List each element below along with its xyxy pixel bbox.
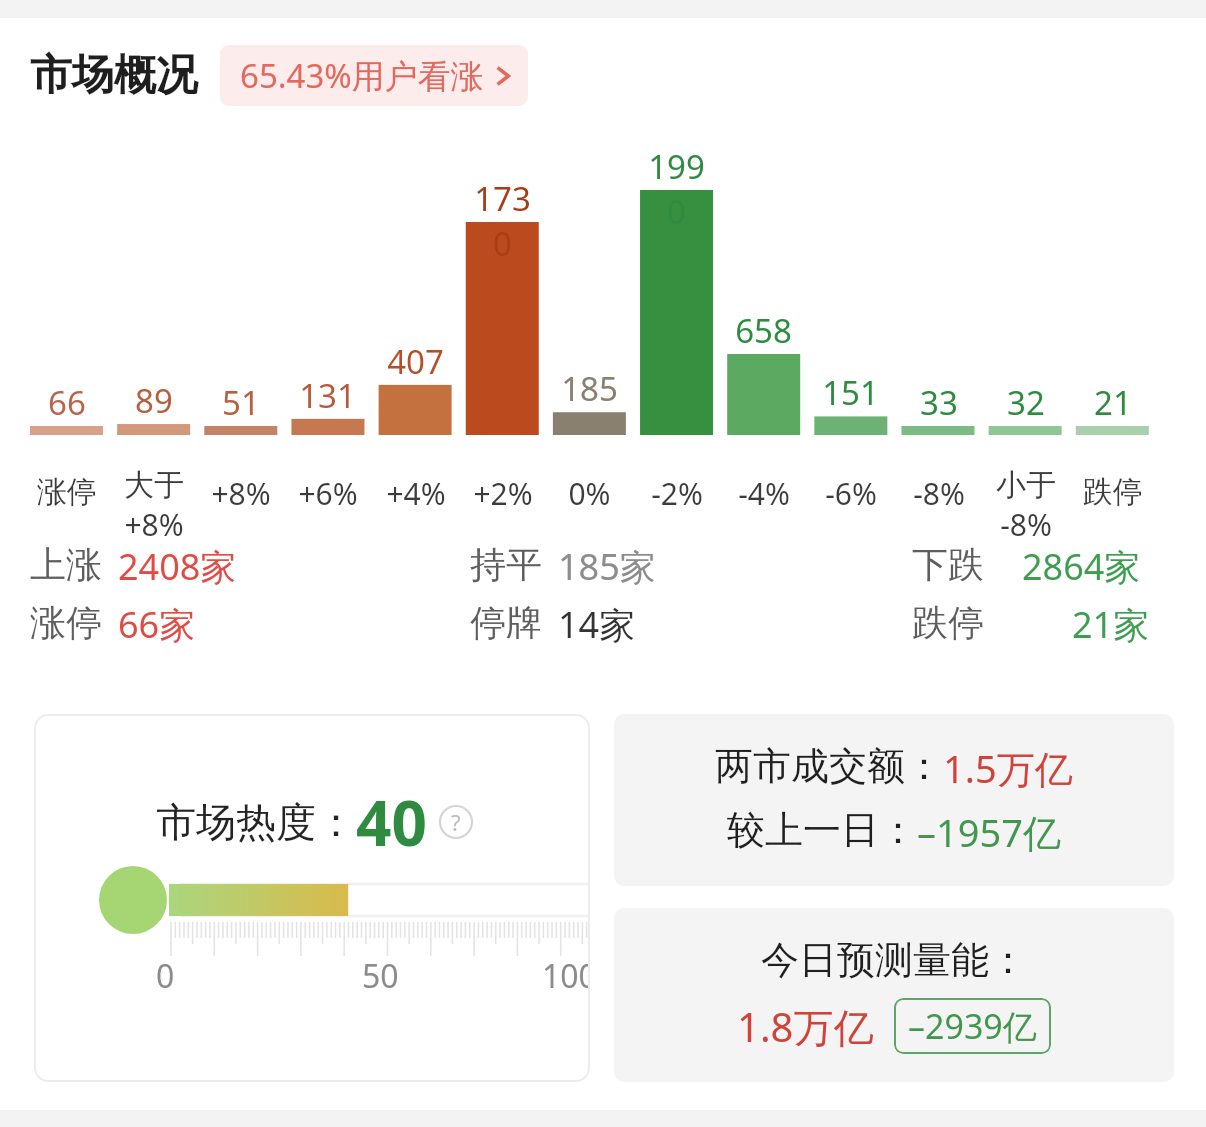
- staticText: 跌停: [912, 600, 984, 645]
- staticText: 131: [299, 373, 356, 418]
- staticText: +8%: [211, 473, 271, 514]
- staticText: –2939亿: [908, 1003, 1037, 1049]
- staticText: 50: [362, 954, 399, 998]
- button[interactable]: 今日预测量能：: [614, 908, 1174, 1082]
- staticText: 涨停: [37, 473, 97, 511]
- staticText: 两市成交额：: [715, 742, 943, 790]
- staticText: +6%: [298, 473, 358, 514]
- staticText: 1990: [640, 144, 713, 234]
- staticText: -8%: [1000, 504, 1052, 545]
- staticText: 40: [356, 780, 427, 864]
- staticText: 151: [822, 370, 879, 415]
- staticText: 停牌: [470, 600, 542, 645]
- staticText: 市场热度：: [156, 797, 356, 847]
- staticText: 658: [735, 308, 792, 353]
- staticText: -2%: [651, 473, 703, 514]
- staticText: 1.8万亿: [737, 999, 874, 1054]
- staticText: 持平: [470, 542, 542, 587]
- staticText: 66家: [118, 600, 196, 649]
- staticText: 14家: [558, 600, 636, 649]
- staticText: 66: [48, 380, 86, 425]
- staticText: –1957亿: [917, 806, 1061, 858]
- staticText: 1.5万亿: [943, 742, 1073, 794]
- staticText: 大于: [124, 466, 184, 504]
- staticText: +4%: [386, 473, 446, 514]
- button[interactable]: 两市成交额：: [614, 714, 1174, 886]
- staticText: 21: [1094, 380, 1132, 425]
- staticText: 185家: [558, 542, 656, 591]
- staticText: 下跌: [912, 542, 984, 587]
- staticText: +8%: [124, 504, 184, 545]
- staticText: 2408家: [118, 542, 237, 591]
- staticText: 407: [387, 339, 444, 384]
- staticText: 市场概况: [30, 49, 198, 102]
- staticText: 今日预测量能：: [761, 936, 1027, 984]
- staticText: 33: [920, 380, 958, 425]
- staticText: 65.43%用户看涨: [240, 53, 484, 98]
- staticText: -6%: [825, 473, 877, 514]
- button[interactable]: 65.43%用户看涨: [220, 45, 528, 106]
- staticText: 小于: [996, 466, 1056, 504]
- staticText: ?: [451, 807, 461, 837]
- staticText: 100: [542, 954, 590, 998]
- staticText: 上涨: [30, 542, 102, 587]
- staticText: 21家: [1072, 600, 1150, 649]
- staticText: +2%: [473, 473, 533, 514]
- staticText: 2864家: [1022, 542, 1141, 591]
- staticText: 89: [135, 378, 173, 423]
- staticText: 0: [156, 954, 175, 998]
- staticText: -8%: [913, 473, 965, 514]
- staticText: -4%: [738, 473, 790, 514]
- staticText: 跌停: [1083, 473, 1143, 511]
- staticText: 0%: [568, 473, 611, 514]
- button[interactable]: 市场热度：: [34, 714, 590, 1082]
- staticText: 51: [222, 380, 260, 425]
- staticText: 涨停: [30, 600, 102, 645]
- staticText: 185: [561, 366, 618, 411]
- button[interactable]: 说明: [439, 805, 473, 839]
- staticText: 32: [1007, 380, 1045, 425]
- staticText: 较上一日：: [727, 806, 917, 854]
- staticText: 1730: [466, 176, 539, 266]
